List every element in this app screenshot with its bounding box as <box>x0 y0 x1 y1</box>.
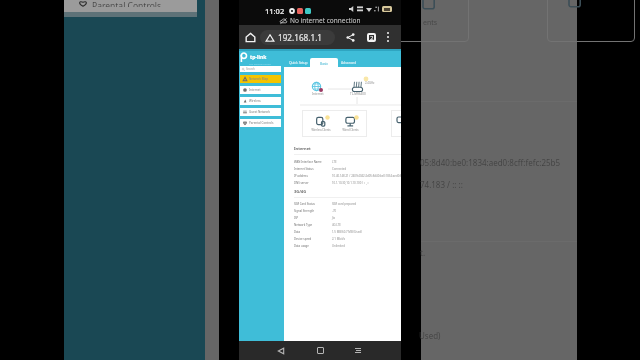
staticText: Internet <box>294 146 311 151</box>
button[interactable]: Home <box>243 25 258 49</box>
staticText: Internet Status <box>294 167 332 171</box>
staticText: 10.1.10.30,10.1.10.100 / :: , :: <box>332 181 369 185</box>
staticText: Parental Controls <box>249 121 274 125</box>
staticText: 4G LTE <box>332 223 341 227</box>
staticText: SIM card prepared <box>332 202 357 206</box>
staticText: Advanced <box>341 60 357 64</box>
button[interactable]: Wireless Clients <box>308 116 334 132</box>
staticText: 11:02 <box>265 6 285 16</box>
staticText: IP address <box>294 174 332 178</box>
staticText: Internet <box>312 92 324 96</box>
staticText: Quick Setup <box>289 60 308 64</box>
staticText: WAN Interface Name <box>294 160 332 164</box>
staticText: Data usage <box>294 244 332 248</box>
staticText: ISP <box>294 216 332 220</box>
staticText: t. <box>420 247 426 258</box>
staticText: 192.168.1.1 <box>278 32 323 43</box>
button[interactable]: Parental Controls <box>240 119 281 127</box>
staticText: SIM Card Status <box>294 202 332 206</box>
button[interactable]: 192.168.1.1 <box>260 30 335 45</box>
staticText: Guest Network <box>249 110 271 114</box>
button[interactable]: More options <box>380 25 396 49</box>
staticText: Used) <box>419 330 441 341</box>
button[interactable]: Basic <box>310 58 338 68</box>
staticText: Network Map <box>249 77 269 81</box>
staticText: Network Type <box>294 223 332 227</box>
staticText: Wired Clients <box>342 128 359 132</box>
staticText: Jio <box>332 216 336 220</box>
button[interactable]: Advanced <box>341 56 357 67</box>
button[interactable]: Internet <box>240 86 281 94</box>
staticText: 74.183 / :: :: <box>420 179 463 190</box>
staticText: -70 <box>332 209 337 213</box>
staticText: 2.4GHz <box>365 81 375 85</box>
staticText: TL-MR6400 <box>350 92 366 96</box>
staticText: Internet <box>249 88 261 92</box>
button[interactable]: Network Map <box>240 75 281 83</box>
staticText: Search <box>246 67 255 71</box>
staticText: 10.40.148.21 / 2409:4042:2d05:8d40:be0:1… <box>332 174 401 178</box>
staticText: 1.5 MB/60.7 MB (Used) <box>332 230 362 234</box>
staticText: Signal Strength <box>294 209 332 213</box>
staticText: ents <box>423 18 438 28</box>
staticText: Wireless <box>249 99 261 103</box>
staticText: No internet connection <box>290 16 361 25</box>
staticText: tp-link <box>250 54 267 61</box>
staticText: Wireless Clients <box>311 128 331 132</box>
staticText: 2 <box>370 34 374 42</box>
button[interactable]: Wired Clients <box>337 116 363 132</box>
button[interactable]: Recent apps <box>344 341 372 360</box>
staticText: 3G/4G <box>294 189 307 194</box>
staticText: Basic <box>320 61 329 65</box>
staticText: Unlimited <box>332 244 345 248</box>
button[interactable]: Guest Network <box>240 108 281 116</box>
staticText: 05:8d40:be0:1834:aed0:8cff:fefc:25b5 <box>420 157 561 168</box>
button[interactable]: Back <box>267 341 295 360</box>
staticText: Device speed <box>294 237 332 241</box>
staticText: Connected <box>332 167 347 171</box>
staticText: LTE <box>332 160 337 164</box>
button[interactable]: Switch tabs <box>363 25 379 49</box>
button[interactable]: Share <box>342 25 358 49</box>
staticText: Data <box>294 230 332 234</box>
button[interactable]: Home <box>306 341 334 360</box>
button[interactable]: Quick Setup <box>287 56 309 67</box>
staticText: Parental Controls <box>92 0 162 7</box>
staticText: DNS server <box>294 181 332 185</box>
staticText: 2.1 Mbit/s <box>332 237 346 241</box>
button[interactable]: Wireless <box>240 97 281 105</box>
staticText: The Reliable Choice <box>249 62 271 65</box>
